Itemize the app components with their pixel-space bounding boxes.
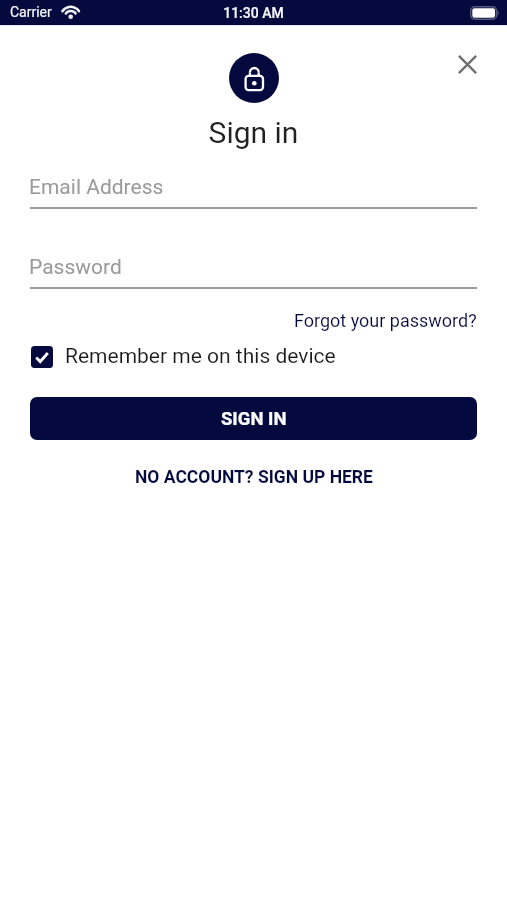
button[interactable]: Remember me on this device	[31, 344, 336, 369]
staticText: Email Address	[29, 175, 164, 200]
button[interactable]: SIGN IN	[30, 397, 477, 440]
staticText: 11:30 AM	[0, 5, 507, 21]
button[interactable]: NO ACCOUNT? SIGN UP HERE	[135, 467, 373, 488]
staticText: Sign in	[0, 115, 507, 150]
button[interactable]: Forgot your password?	[294, 310, 477, 331]
staticText: Remember me on this device	[65, 344, 336, 369]
staticText: SIGN IN	[221, 408, 287, 430]
staticText: Carrier	[10, 4, 52, 20]
button[interactable]	[454, 51, 481, 78]
staticText: Password	[29, 255, 122, 280]
